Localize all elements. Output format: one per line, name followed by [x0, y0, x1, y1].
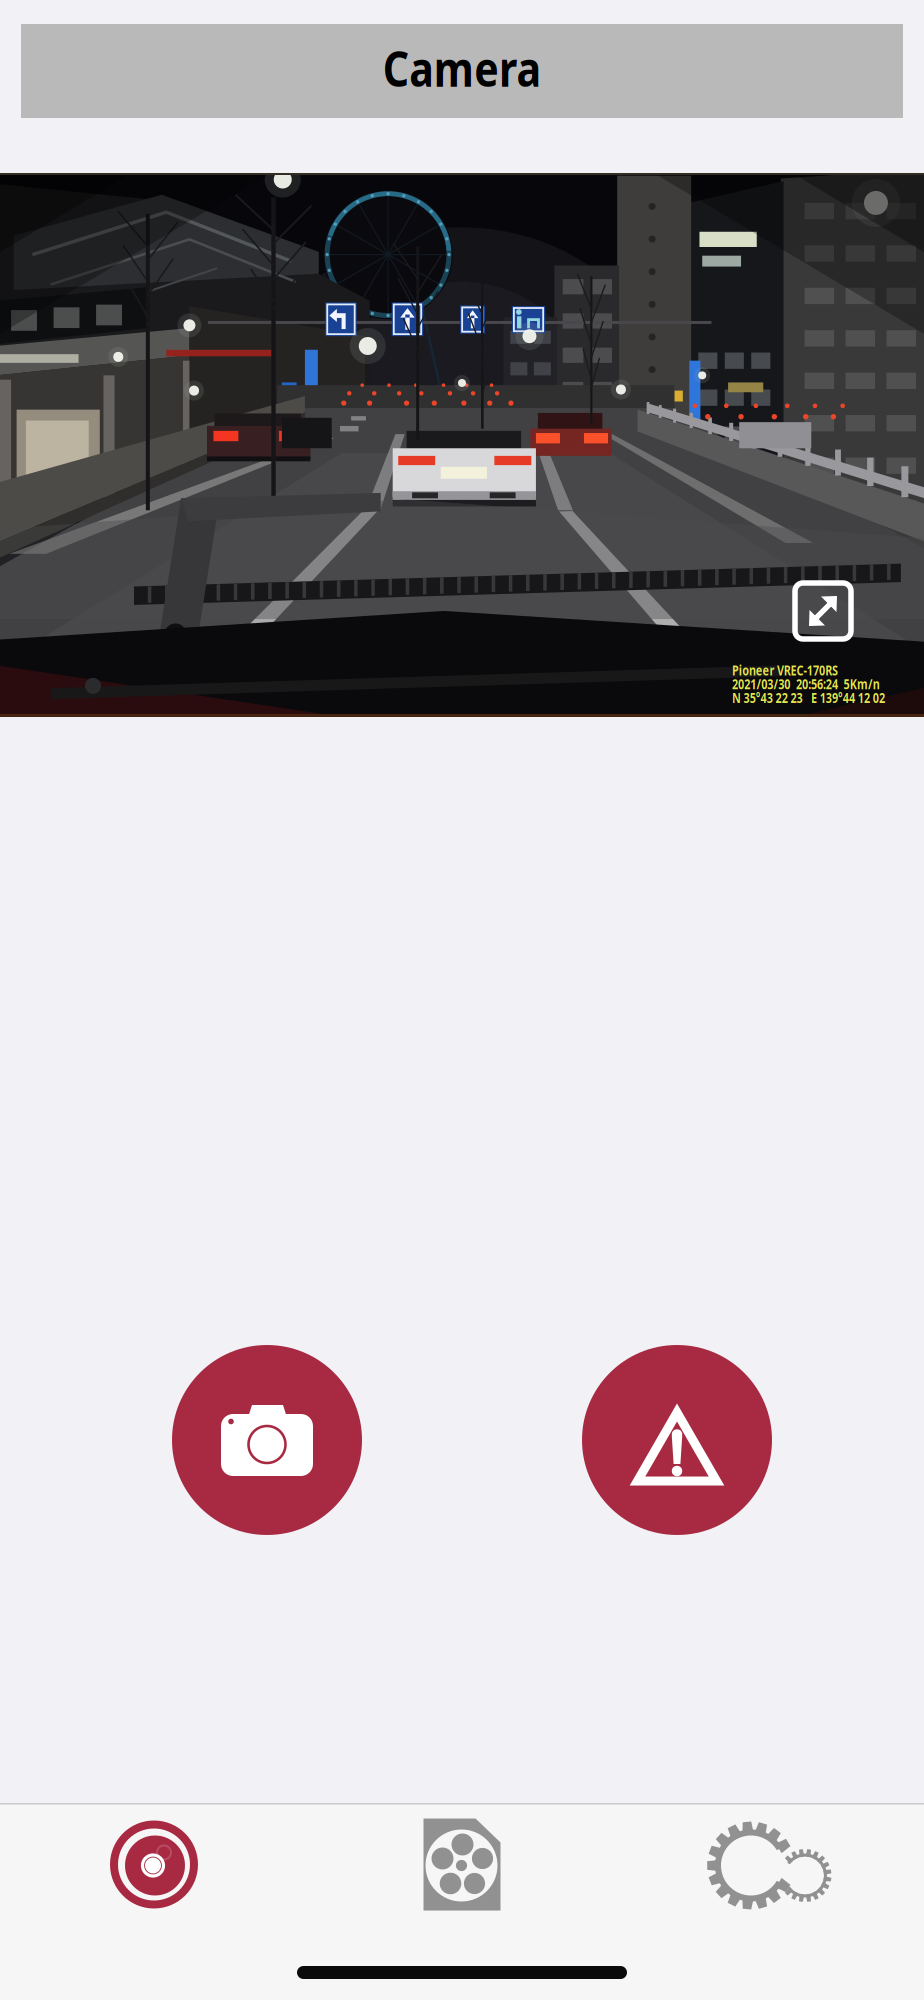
button[interactable]: Recordings [308, 1804, 616, 1924]
button[interactable]: Camera [0, 1804, 308, 1924]
button[interactable]: Emergency record [582, 1345, 772, 1535]
button[interactable]: Full screen [795, 583, 851, 639]
button[interactable]: Settings [616, 1804, 924, 1924]
button[interactable]: Take photo [172, 1345, 362, 1535]
staticText: Camera [372, 37, 552, 99]
staticText: N 35°43 22 23 E 139°44 12 02 [660, 688, 885, 709]
staticText: 2021/03/30 20:56:24 5Km/n [660, 673, 877, 694]
staticText: Pioneer VREC-170RS [660, 658, 816, 679]
